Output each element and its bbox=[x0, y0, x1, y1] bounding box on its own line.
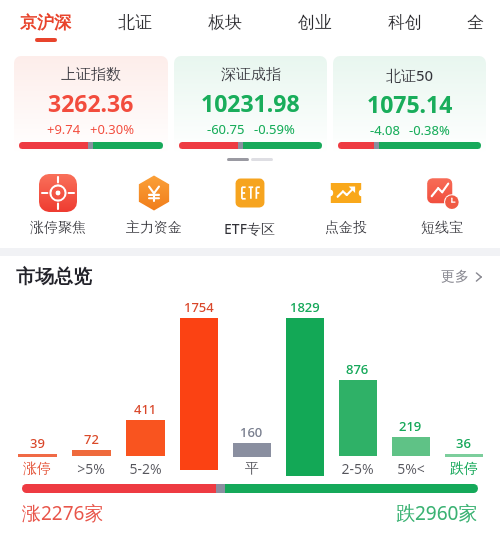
staticText: 全 bbox=[467, 12, 484, 33]
staticText: 3262.36 bbox=[48, 87, 134, 118]
staticText: 北证50 bbox=[386, 65, 434, 85]
staticText: ETF专区 bbox=[224, 219, 276, 238]
staticText: 72 bbox=[84, 430, 99, 448]
button[interactable]: 1829 bbox=[278, 298, 331, 478]
button[interactable]: 36 bbox=[437, 298, 490, 478]
staticText: -0.59% bbox=[254, 120, 295, 138]
staticText: +0.30% bbox=[90, 120, 135, 138]
staticText: 创业 bbox=[298, 12, 332, 33]
staticText: -60.75 bbox=[207, 120, 245, 138]
button[interactable]: 科创 bbox=[360, 0, 450, 50]
button[interactable]: 411 bbox=[118, 298, 172, 478]
button[interactable]: 上证指数 bbox=[14, 56, 168, 154]
staticText: 板块 bbox=[208, 12, 242, 33]
button[interactable]: 39 bbox=[10, 298, 64, 478]
button[interactable]: 160 bbox=[225, 298, 278, 478]
button[interactable]: 涨停聚焦 bbox=[10, 174, 106, 237]
button[interactable]: 全 bbox=[450, 0, 500, 50]
staticText: 5-2% bbox=[129, 459, 162, 478]
button[interactable]: ETF专区 bbox=[202, 174, 298, 238]
button[interactable]: 主力资金 bbox=[106, 174, 202, 237]
button[interactable]: 219 bbox=[384, 298, 437, 478]
staticText: -4.08 bbox=[370, 121, 400, 139]
staticText: 短线宝 bbox=[421, 219, 463, 237]
staticText: +9.74 bbox=[47, 120, 81, 138]
staticText: 更多 bbox=[441, 268, 469, 286]
button[interactable]: 短线宝 bbox=[394, 174, 490, 237]
staticText: 跌2960家 bbox=[396, 500, 478, 526]
staticText: 深证成指 bbox=[221, 65, 281, 84]
staticText: 10231.98 bbox=[201, 87, 300, 118]
staticText: 36 bbox=[456, 434, 471, 452]
staticText: 上证指数 bbox=[61, 65, 121, 84]
staticText: 科创 bbox=[388, 12, 422, 33]
staticText: 5%< bbox=[397, 459, 425, 478]
staticText: 主力资金 bbox=[126, 219, 182, 237]
staticText: 160 bbox=[240, 423, 263, 441]
button[interactable]: 京沪深 bbox=[0, 0, 90, 50]
button[interactable]: 北证 bbox=[90, 0, 180, 50]
staticText: 219 bbox=[399, 417, 422, 435]
staticText: 411 bbox=[134, 400, 157, 418]
staticText: 1075.14 bbox=[367, 88, 453, 119]
staticText: 市场总览 bbox=[16, 265, 92, 289]
staticText: 涨停聚焦 bbox=[30, 219, 86, 237]
staticText: -0.38% bbox=[409, 121, 450, 139]
staticText: 涨2276家 bbox=[22, 500, 104, 526]
staticText: 876 bbox=[346, 360, 369, 378]
staticText: 39 bbox=[30, 434, 45, 452]
button[interactable]: 点金投 bbox=[298, 174, 394, 237]
staticText: 点金投 bbox=[325, 219, 367, 237]
button[interactable]: 876 bbox=[331, 298, 384, 478]
button[interactable]: 创业 bbox=[270, 0, 360, 50]
staticText: 北证 bbox=[118, 12, 152, 33]
staticText: >5% bbox=[77, 459, 105, 478]
staticText: 1754 bbox=[184, 298, 214, 316]
button[interactable]: 北证50 bbox=[333, 56, 486, 154]
button[interactable]: 1754 bbox=[172, 298, 225, 478]
staticText: 1829 bbox=[290, 298, 320, 316]
button[interactable]: 深证成指 bbox=[174, 56, 327, 154]
staticText: 平 bbox=[245, 460, 259, 478]
staticText: 涨停 bbox=[23, 460, 51, 478]
button[interactable]: 72 bbox=[64, 298, 118, 478]
staticText: 2-5% bbox=[341, 459, 374, 478]
button[interactable]: 板块 bbox=[180, 0, 270, 50]
staticText: 跌停 bbox=[450, 460, 478, 478]
button[interactable]: 更多 bbox=[441, 268, 484, 286]
staticText: 京沪深 bbox=[20, 12, 71, 33]
